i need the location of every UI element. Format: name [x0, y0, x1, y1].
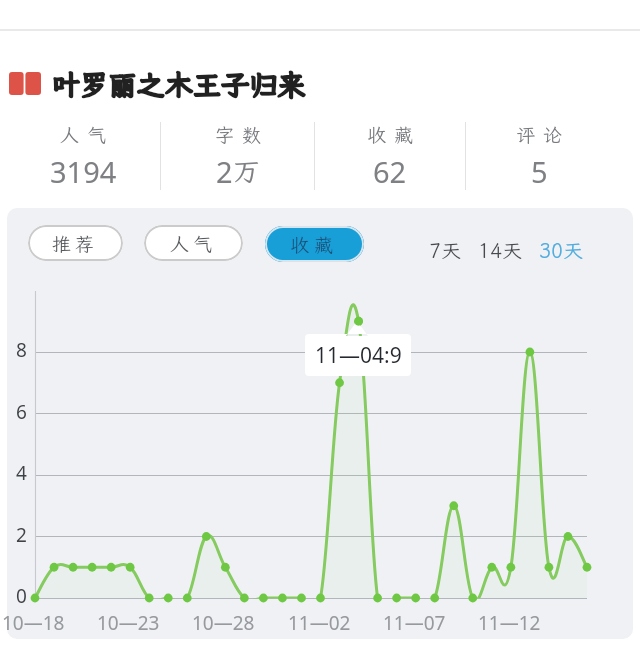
staticText: 10—18 [2, 610, 65, 632]
staticText: 62 [373, 152, 407, 190]
staticText: 4 [16, 460, 27, 484]
staticText: 11—04:9 [315, 341, 402, 370]
staticText: 14天 [478, 237, 522, 263]
staticText: 叶罗丽之木王子归来 [52, 66, 306, 102]
staticText: 推荐 [52, 231, 99, 256]
button[interactable]: 30天 [526, 236, 596, 263]
staticText: 30天 [539, 237, 583, 263]
staticText: 5 [531, 152, 548, 190]
staticText: 万 [233, 153, 260, 189]
button[interactable]: 7天 [410, 236, 480, 263]
button[interactable]: 人气 [17, 120, 157, 148]
button[interactable]: 收藏 [324, 120, 464, 148]
staticText: 10—28 [192, 610, 255, 632]
staticText: 人气 [170, 231, 217, 256]
staticText: 叶罗丽之木王子归来 [52, 66, 306, 102]
button[interactable]: 字数 [172, 120, 312, 148]
button[interactable]: 人气 [144, 225, 243, 261]
staticText: 收藏 [290, 232, 339, 257]
staticText: 11—02 [288, 610, 351, 632]
staticText: 人气 [60, 122, 115, 147]
staticText: 收藏 [367, 122, 422, 147]
staticText: 10—23 [97, 610, 160, 632]
staticText: 评论 [516, 122, 571, 147]
button[interactable]: 推荐 [28, 225, 123, 261]
staticText: 2 [16, 522, 27, 546]
staticText: 0 [16, 583, 27, 607]
button[interactable]: 14天 [465, 236, 535, 263]
button[interactable]: 收藏 [265, 226, 364, 262]
staticText: 7天 [429, 237, 461, 263]
staticText: 2 [216, 152, 233, 190]
staticText: 3194 [50, 152, 117, 190]
staticText: 11—07 [383, 610, 446, 632]
button[interactable]: 评论 [473, 120, 613, 148]
staticText: 8 [16, 337, 27, 361]
button[interactable]: 叶罗丽之木王子归来 [52, 66, 322, 102]
staticText: 字数 [215, 122, 270, 147]
staticText: 6 [16, 399, 27, 423]
staticText: 11—12 [478, 610, 541, 632]
